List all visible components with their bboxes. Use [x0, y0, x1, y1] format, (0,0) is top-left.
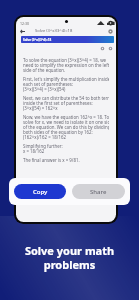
- button[interactable]: Copy text: [108, 46, 113, 51]
- staticText: Now, we have the equation 162^x = 18. To…: [23, 114, 109, 140]
- staticText: Copy: [33, 188, 48, 196]
- staticText: Solve (3^x)(3^4)=18: [23, 38, 52, 42]
- staticText: Share: [90, 188, 107, 196]
- staticText: Solve your math problems: [0, 243, 139, 272]
- button[interactable]: Listen: [100, 46, 105, 51]
- button[interactable]: Share: [72, 184, 125, 199]
- button[interactable]: Back: [19, 28, 26, 35]
- staticText: The final answer is x = 9/81.: [23, 157, 80, 163]
- staticText: First, let's simplify the multiplication…: [23, 76, 109, 92]
- button[interactable]: More options: [107, 28, 114, 35]
- button[interactable]: Copy: [14, 184, 66, 199]
- staticText: To solve the equation (3^x)(3^4) = 18, w…: [23, 57, 109, 73]
- staticText: Simplifying further: x = 18/162: [23, 143, 63, 154]
- staticText: Solve (3^x)(3^4)=18: [35, 28, 73, 34]
- staticText: Next, we can distribute the 54 to both t…: [23, 95, 109, 111]
- staticText: 12:30: [20, 21, 29, 26]
